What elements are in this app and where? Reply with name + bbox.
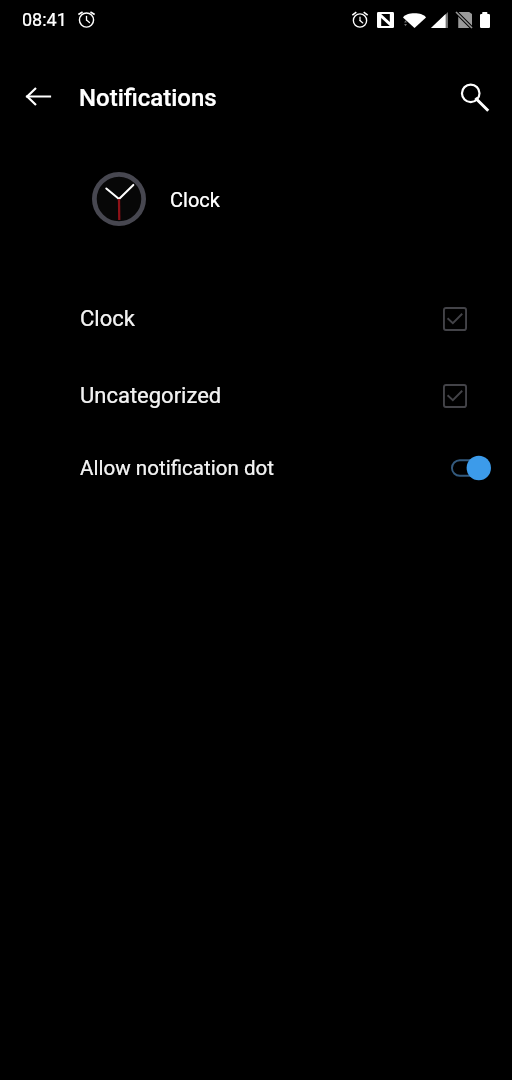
button[interactable]: Allow notification dot	[0, 434, 512, 502]
button[interactable]: Clock	[0, 285, 512, 353]
staticText: Clock	[80, 306, 135, 332]
button[interactable]: Search	[450, 77, 498, 115]
staticText: Allow notification dot	[80, 456, 275, 480]
staticText: Notifications	[79, 84, 217, 112]
staticText: Clock	[170, 188, 220, 211]
button[interactable]: Uncategorized	[0, 362, 512, 430]
button[interactable]: Back	[14, 77, 62, 115]
button[interactable]: Clock	[0, 164, 512, 234]
staticText: Uncategorized	[80, 383, 222, 409]
staticText: 08:41	[22, 9, 67, 30]
